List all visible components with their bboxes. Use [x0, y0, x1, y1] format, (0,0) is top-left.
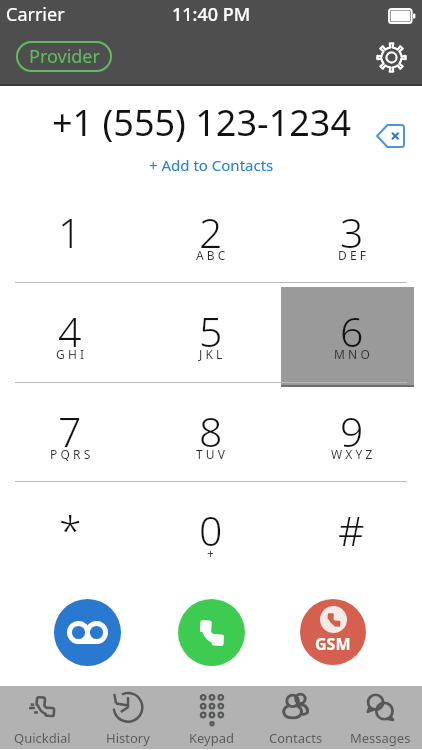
button[interactable]: 4: [0, 283, 140, 383]
staticText: GSM: [315, 633, 351, 655]
button[interactable]: Delete: [372, 121, 408, 151]
staticText: *: [59, 502, 82, 558]
staticText: Quickdial: [14, 729, 71, 747]
button[interactable]: Provider: [16, 41, 112, 72]
button[interactable]: 9: [281, 383, 422, 482]
button[interactable]: 6: [281, 283, 422, 383]
staticText: 8: [199, 403, 223, 459]
button[interactable]: 8: [140, 383, 281, 482]
staticText: #: [338, 502, 365, 558]
staticText: +: [207, 545, 218, 561]
button[interactable]: #: [281, 482, 422, 582]
staticText: MNO: [334, 346, 373, 362]
staticText: Messages: [350, 729, 411, 747]
button[interactable]: Quickdial: [0, 686, 85, 749]
staticText: Keypad: [189, 729, 235, 747]
button[interactable]: *: [0, 482, 140, 582]
button[interactable]: + Add to Contacts: [149, 155, 274, 175]
button[interactable]: GSM call: [300, 599, 366, 665]
staticText: 2: [199, 204, 223, 260]
button[interactable]: Keypad: [170, 686, 254, 749]
button[interactable]: Call: [178, 599, 245, 666]
staticText: 6: [340, 303, 364, 359]
button[interactable]: 0: [140, 482, 281, 582]
button[interactable]: Voicemail: [54, 599, 121, 666]
staticText: 4: [58, 303, 82, 359]
staticText: 7: [58, 403, 82, 459]
staticText: 5: [199, 303, 223, 359]
button[interactable]: History: [85, 686, 170, 749]
button[interactable]: 2: [140, 184, 281, 283]
button[interactable]: 1: [0, 184, 140, 283]
button[interactable]: Messages: [338, 686, 422, 749]
button[interactable]: 5: [140, 283, 281, 383]
staticText: ABC: [196, 247, 229, 263]
staticText: Provider: [29, 44, 100, 69]
staticText: GHI: [56, 346, 88, 362]
staticText: 1: [58, 204, 82, 260]
staticText: WXYZ: [331, 446, 376, 462]
staticText: Contacts: [269, 729, 323, 747]
staticText: JKL: [199, 346, 226, 362]
staticText: History: [106, 729, 150, 747]
button[interactable]: 7: [0, 383, 140, 482]
staticText: +1 (555) 123-1234: [52, 98, 352, 147]
button[interactable]: 3: [281, 184, 422, 283]
staticText: PQRS: [50, 446, 94, 462]
staticText: DEF: [338, 247, 370, 263]
staticText: 9: [340, 403, 364, 459]
staticText: 11:40 PM: [172, 2, 251, 27]
staticText: 0: [199, 502, 223, 558]
staticText: 3: [340, 204, 364, 260]
button[interactable]: Contacts: [254, 686, 338, 749]
staticText: Carrier: [6, 2, 65, 27]
staticText: TUV: [196, 446, 229, 462]
button[interactable]: Settings: [371, 37, 411, 77]
